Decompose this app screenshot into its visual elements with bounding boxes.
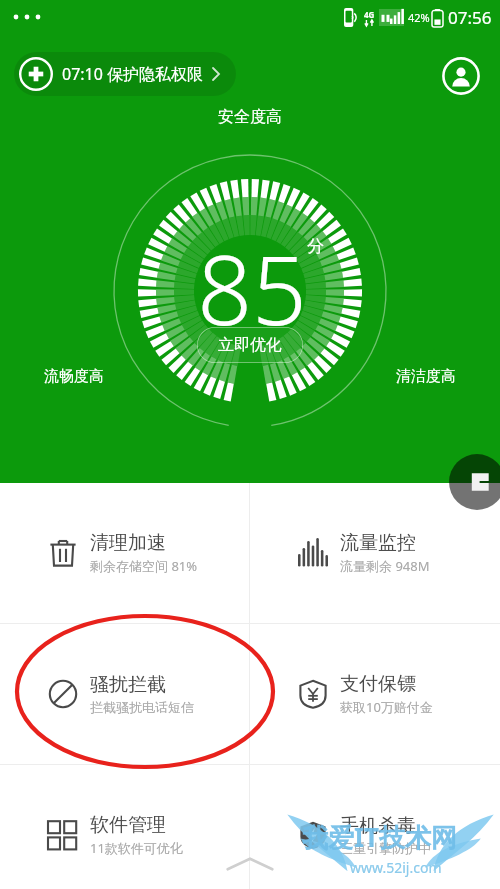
staticText: 85	[197, 222, 307, 353]
staticText: 4G	[364, 9, 375, 20]
staticText: www.52ij.com	[350, 858, 442, 877]
staticText: 安全度高	[218, 107, 282, 127]
staticText: 立即优化	[218, 335, 282, 355]
staticText: 42%	[408, 10, 430, 25]
button[interactable]: 流量监控	[250, 483, 500, 623]
staticText: 手机杀毒	[340, 814, 416, 838]
button[interactable]: Profile	[442, 57, 480, 95]
staticText: 剩余存储空间 81%	[90, 557, 198, 575]
staticText: 分	[307, 236, 324, 257]
staticText: 三重引擎防护中	[340, 840, 431, 856]
button[interactable]: 07:10 保护隐私权限	[14, 52, 236, 96]
staticText: 11款软件可优化	[90, 839, 183, 857]
staticText: 拦截骚扰电话短信	[90, 699, 194, 715]
staticText: 07:10 保护隐私权限	[62, 63, 204, 85]
staticText: 骚扰拦截	[90, 673, 166, 697]
staticText: 我爱IT技术网	[302, 819, 458, 855]
button[interactable]: 手机杀毒	[250, 765, 500, 889]
staticText: 07:56	[448, 6, 492, 29]
staticText: 清洁度高	[396, 367, 456, 386]
button[interactable]: 立即优化	[197, 327, 303, 363]
staticText: 获取10万赔付金	[340, 698, 433, 716]
button[interactable]: 支付保镖	[250, 624, 500, 764]
button[interactable]: Assistant	[449, 454, 500, 510]
staticText: 流畅度高	[44, 367, 104, 386]
staticText: 清理加速	[90, 531, 166, 555]
staticText: 支付保镖	[340, 672, 416, 696]
button[interactable]: Expand	[222, 852, 278, 876]
button[interactable]: 软件管理	[0, 765, 250, 889]
staticText: 流量剩余 948M	[340, 557, 430, 575]
staticText: 流量监控	[340, 531, 416, 555]
staticText: 软件管理	[90, 813, 166, 837]
button[interactable]: 骚扰拦截	[0, 624, 250, 764]
button[interactable]: 清理加速	[0, 483, 250, 623]
